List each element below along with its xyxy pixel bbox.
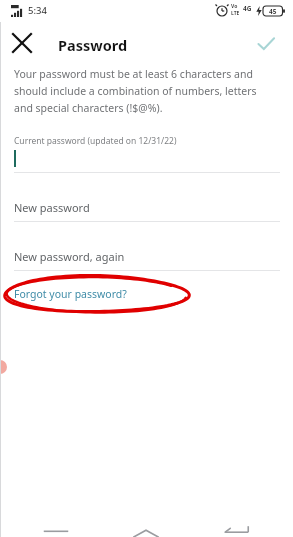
button[interactable]: New password, again — [0, 242, 293, 270]
staticText: 45 — [269, 7, 277, 16]
button[interactable]: New password — [0, 193, 293, 221]
staticText: Your password must be at least 6 charact… — [14, 67, 277, 115]
staticText: Current password (updated on 12/31/22) — [14, 135, 177, 147]
button[interactable]: Save password — [250, 28, 282, 60]
staticText: Forgot your password? — [14, 287, 127, 301]
button[interactable]: Back — [218, 522, 254, 537]
staticText: 5:34 — [28, 4, 47, 17]
button[interactable]: Recent apps — [38, 522, 74, 537]
button[interactable]: Close — [6, 27, 38, 59]
button[interactable]: Current password (updated on 12/31/22) — [0, 135, 293, 175]
staticText: New password — [14, 200, 90, 215]
staticText: Password — [58, 35, 128, 55]
staticText: Vo LTE — [231, 3, 240, 16]
staticText: 4G — [243, 4, 252, 13]
staticText: New password, again — [14, 249, 125, 264]
button[interactable]: Home — [128, 522, 164, 537]
button[interactable]: Forgot your password? — [14, 287, 127, 301]
